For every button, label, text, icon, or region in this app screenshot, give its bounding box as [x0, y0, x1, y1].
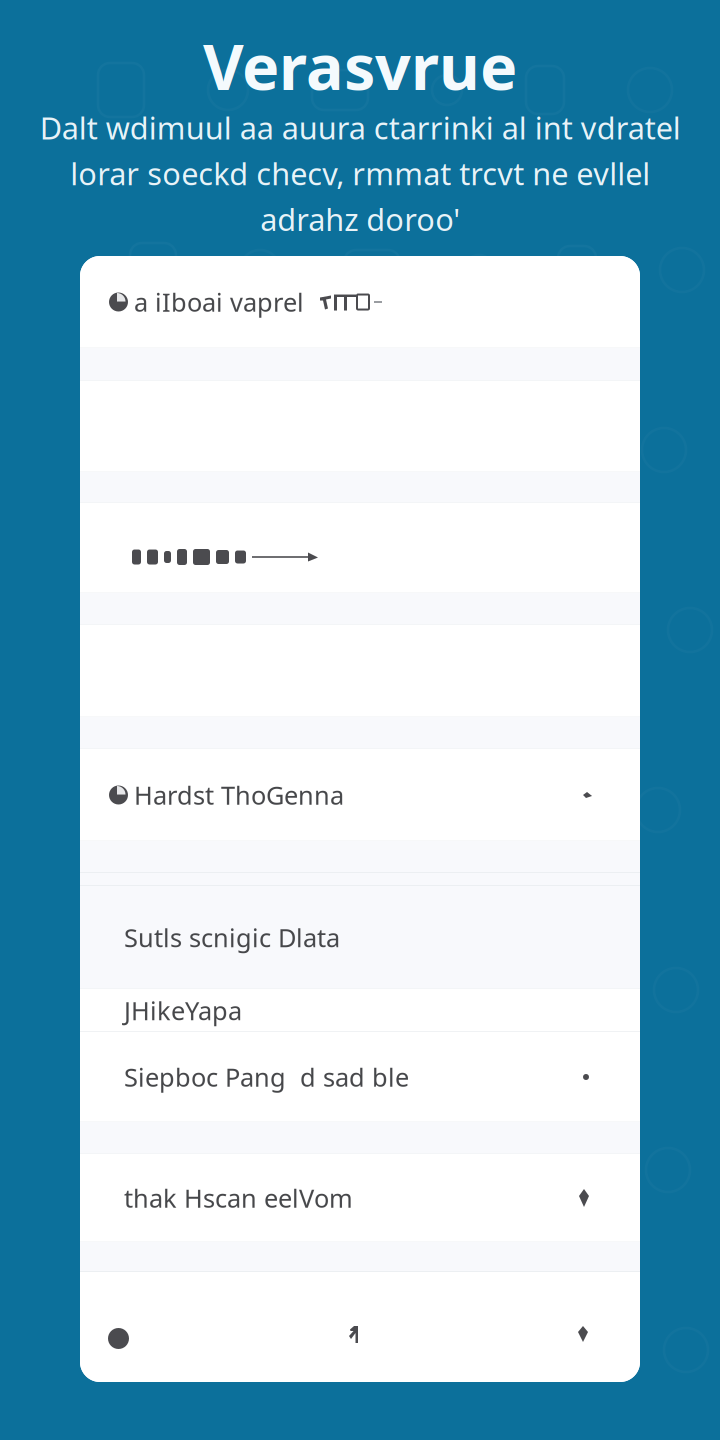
button[interactable]: Hardst ThoGenna	[80, 749, 640, 841]
staticText: Sutls scnigic Dlata	[124, 921, 340, 954]
staticText: JHikeYapa	[124, 994, 242, 1027]
staticText: adrahz doroo'	[260, 199, 460, 239]
staticText: Dalt wdimuul aa auura ctarrinki al int v…	[39, 107, 680, 148]
staticText: thak Hscan eelVom	[124, 1181, 353, 1215]
button[interactable]: Attachments	[80, 503, 640, 593]
button[interactable]: Profile	[560, 1272, 640, 1382]
button[interactable]: Sutls scnigic Dlata	[80, 886, 640, 989]
button[interactable]: Siepboc Pang d sad ble	[80, 1032, 640, 1122]
button[interactable]: Search	[331, 1272, 376, 1382]
staticText: lorar soeckd checv, rmmat trcvt ne evlle…	[70, 153, 650, 194]
button[interactable]: a iIboai vaprel	[80, 256, 640, 348]
button[interactable]: thak Hscan eelVom	[80, 1154, 640, 1242]
staticText: Verasvrue	[203, 24, 517, 107]
staticText: Siepboc Pang d sad ble	[124, 1060, 409, 1094]
button[interactable]: JHikeYapa	[80, 989, 640, 1032]
button[interactable]: Home	[80, 1272, 147, 1382]
staticText: Hardst ThoGenna	[134, 778, 344, 812]
staticText: a iIboai vaprel	[134, 285, 304, 319]
